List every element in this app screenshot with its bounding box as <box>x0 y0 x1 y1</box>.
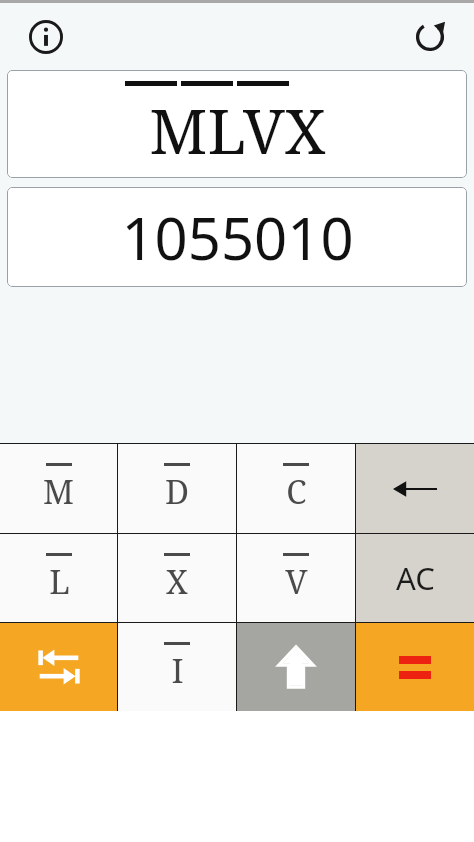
staticText: AC <box>396 557 435 599</box>
button[interactable]: MLVX <box>7 70 467 178</box>
button[interactable]: AC <box>356 534 474 622</box>
button[interactable]: C <box>237 444 355 533</box>
staticText: C <box>286 469 307 514</box>
button[interactable]: Equals <box>356 623 474 711</box>
button[interactable]: X <box>118 534 236 622</box>
button[interactable]: V <box>237 534 355 622</box>
staticText: L <box>49 559 70 604</box>
staticText: X <box>166 559 188 604</box>
staticText: MLVX <box>149 88 326 172</box>
staticText: I <box>171 648 184 693</box>
staticText: M <box>43 469 74 514</box>
button[interactable]: Shift <box>237 623 355 711</box>
button[interactable]: D <box>118 444 236 533</box>
staticText: D <box>165 469 189 514</box>
staticText: 1055010 <box>121 198 354 277</box>
button[interactable]: I <box>118 623 236 711</box>
button[interactable]: Reset <box>404 11 456 63</box>
staticText: V <box>285 559 308 604</box>
button[interactable]: Swap <box>0 623 117 711</box>
button[interactable]: L <box>0 534 117 622</box>
button[interactable]: Info <box>20 11 72 63</box>
button[interactable]: Backspace <box>356 444 474 533</box>
button[interactable]: M <box>0 444 117 533</box>
button[interactable]: 1055010 <box>7 187 467 287</box>
